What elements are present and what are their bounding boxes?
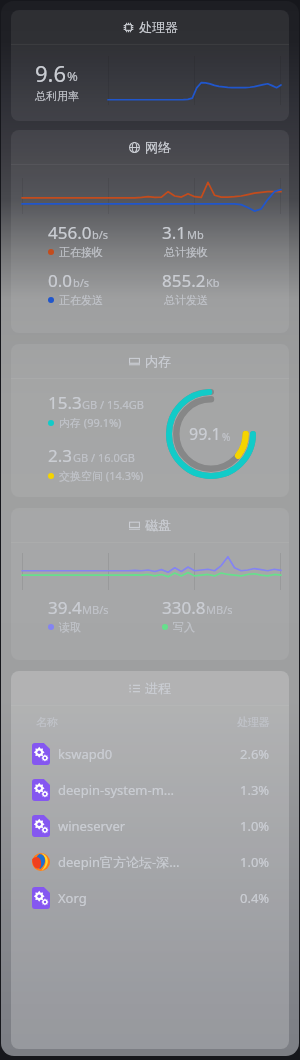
staticText: 写入 — [173, 620, 195, 634]
staticText: 处理器 — [139, 19, 178, 35]
staticText: b/s — [73, 275, 90, 290]
staticText: 总计接收 — [164, 245, 208, 259]
staticText: 0.4% — [240, 889, 270, 907]
button[interactable]: 磁盘 — [11, 508, 289, 660]
staticText: % — [67, 67, 78, 85]
staticText: 总计发送 — [164, 293, 208, 307]
staticText: 99.1 — [189, 423, 221, 445]
staticText: wineserver — [58, 817, 126, 835]
staticText: % — [222, 430, 231, 444]
staticText: GB / 16.0GB — [73, 450, 135, 465]
button[interactable]: wineserver — [32, 808, 270, 844]
staticText: 内存 — [145, 353, 171, 369]
staticText: GB / 15.4GB — [82, 397, 144, 412]
staticText: 0.0 — [48, 269, 73, 292]
staticText: 交换空间 (14.3%) — [59, 468, 144, 483]
staticText: 1.0% — [240, 817, 270, 835]
staticText: 总利用率 — [35, 89, 79, 103]
staticText: deepin官方论坛-深… — [58, 853, 180, 871]
staticText: 磁盘 — [145, 517, 171, 533]
button[interactable]: deepin官方论坛-深… — [32, 844, 270, 880]
staticText: 1.0% — [240, 853, 270, 871]
staticText: Xorg — [58, 889, 87, 907]
staticText: Mb — [187, 227, 204, 242]
staticText: 330.8 — [162, 596, 206, 619]
staticText: 内存 (99.1%) — [59, 415, 122, 430]
staticText: 456.0 — [48, 221, 92, 244]
staticText: Kb — [206, 275, 220, 290]
staticText: 15.3 — [48, 391, 82, 414]
staticText: 处理器 — [237, 715, 270, 729]
staticText: 9.6 — [35, 58, 67, 88]
button[interactable]: Xorg — [32, 880, 270, 916]
staticText: 2.6% — [240, 745, 270, 763]
staticText: 进程 — [145, 680, 171, 696]
staticText: MB/s — [82, 602, 109, 617]
button[interactable]: 处理器 — [11, 10, 289, 121]
staticText: 正在发送 — [59, 293, 103, 307]
staticText: 855.2 — [162, 269, 206, 292]
staticText: 读取 — [59, 620, 81, 634]
staticText: MB/s — [206, 602, 233, 617]
staticText: 1.3% — [240, 781, 270, 799]
staticText: 名称 — [36, 715, 58, 729]
button[interactable]: kswapd0 — [32, 736, 270, 772]
staticText: 正在接收 — [59, 245, 103, 259]
staticText: 2.3 — [48, 444, 73, 467]
button[interactable]: 进程 — [11, 671, 289, 1049]
staticText: b/s — [92, 227, 109, 242]
button[interactable]: 99.1 — [11, 344, 289, 497]
staticText: 网络 — [145, 139, 171, 155]
staticText: deepin-system-m… — [58, 781, 175, 799]
button[interactable]: 网络 — [11, 130, 289, 333]
staticText: kswapd0 — [58, 745, 113, 763]
staticText: 3.1 — [162, 221, 187, 244]
button[interactable]: deepin-system-m… — [32, 772, 270, 808]
staticText: 39.4 — [48, 596, 82, 619]
